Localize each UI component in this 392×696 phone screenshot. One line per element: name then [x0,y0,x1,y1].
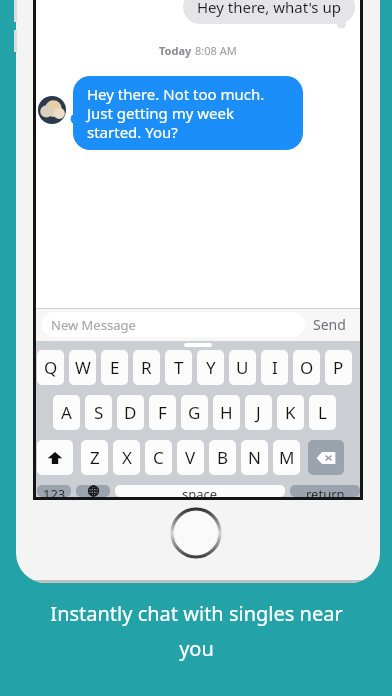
staticText: B [217,446,229,469]
button[interactable]: Backspace [308,440,344,475]
button[interactable]: K [277,395,304,430]
staticText: K [285,401,296,424]
staticText: New Message [51,316,136,334]
staticText: X [122,446,132,469]
button[interactable]: S [85,395,112,430]
button[interactable]: Hey there. Not too much. Just getting my… [73,76,303,150]
button[interactable]: Hey there, what's up [183,0,355,24]
button[interactable]: E [101,350,128,385]
staticText: P [333,356,344,379]
staticText: Today [159,43,195,58]
staticText: D [124,401,137,424]
button[interactable]: Y [197,350,224,385]
button[interactable]: I [261,350,288,385]
staticText: F [158,401,167,424]
button[interactable]: O [293,350,320,385]
staticText: M [279,446,295,469]
button[interactable]: C [145,440,172,475]
staticText: Send [313,315,346,334]
button[interactable]: New Message [42,312,305,337]
button[interactable]: Shift [37,440,73,475]
staticText: E [110,356,120,379]
button[interactable]: D [117,395,144,430]
button[interactable]: space [115,485,285,497]
button[interactable]: Send [305,309,354,340]
button[interactable]: M [273,440,300,475]
button[interactable]: Switch keyboard [76,485,110,497]
button[interactable]: B [209,440,236,475]
staticText: N [248,446,261,469]
staticText: U [236,356,249,379]
staticText: V [185,446,196,469]
staticText: L [318,401,327,424]
button[interactable]: Q [37,350,64,385]
staticText: 8:08 AM [195,43,237,58]
other: Home [171,508,221,558]
staticText: J [256,401,261,424]
button[interactable]: Z [81,440,108,475]
button[interactable]: return [290,485,360,497]
staticText: W [75,356,91,379]
button[interactable]: 123 [37,485,71,497]
staticText: Hey there, what's up [197,0,341,17]
button[interactable]: F [149,395,176,430]
staticText: S [94,401,104,424]
staticText: Y [206,356,216,379]
staticText: Instantly chat with singles near [50,600,343,627]
button[interactable]: N [241,440,268,475]
button[interactable]: L [309,395,336,430]
button[interactable]: V [177,440,204,475]
staticText: return [306,485,345,497]
button[interactable]: W [69,350,96,385]
staticText: T [174,356,184,379]
staticText: I [272,356,278,379]
staticText: Q [44,356,58,379]
button[interactable]: A [53,395,80,430]
staticText: space [182,485,218,497]
staticText: you [179,635,214,662]
button[interactable]: U [229,350,256,385]
staticText: A [61,401,72,424]
staticText: R [141,356,152,379]
button[interactable]: X [113,440,140,475]
staticText: Z [90,446,100,469]
button[interactable]: R [133,350,160,385]
other: Profile photo [38,96,66,124]
staticText: G [188,401,201,424]
button[interactable]: P [325,350,352,385]
staticText: H [220,401,233,424]
button[interactable]: H [213,395,240,430]
staticText: Hey there. Not too much. Just getting my… [87,84,289,142]
staticText: 123 [43,485,66,497]
button[interactable]: G [181,395,208,430]
button[interactable]: J [245,395,272,430]
staticText: C [153,446,164,469]
button[interactable]: T [165,350,192,385]
staticText: O [300,356,314,379]
